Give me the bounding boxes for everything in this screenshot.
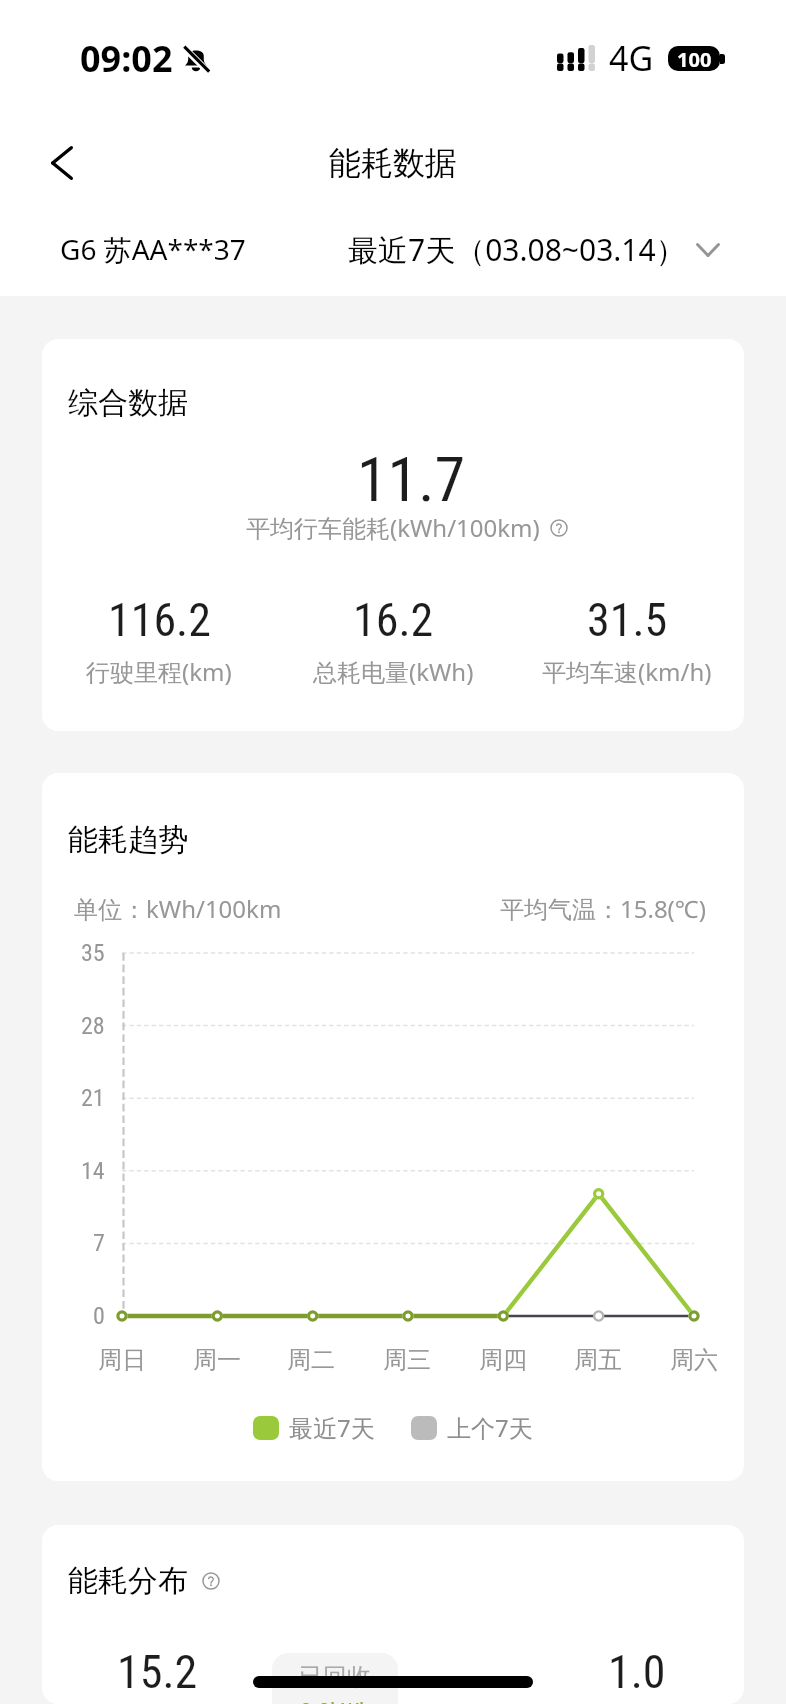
staticText: 平均气温：15.8(℃) (500, 892, 706, 925)
staticText: 11.7 (357, 443, 466, 516)
staticText: 综合数据 (68, 384, 188, 422)
staticText: 7 (93, 1229, 105, 1257)
staticText: 周六 (670, 1345, 718, 1375)
staticText: 31.5 (587, 593, 668, 647)
staticText: 能耗数据 (329, 143, 457, 183)
staticText: 1.0 (608, 1645, 666, 1699)
staticText: 能耗分布 (68, 1562, 188, 1600)
button[interactable]: Back (18, 119, 106, 207)
staticText: 116.2 (108, 593, 211, 647)
staticText: 周五 (574, 1345, 622, 1375)
staticText: 09:02 (80, 34, 173, 83)
staticText: 28 (81, 1012, 105, 1040)
staticText: 周日 (98, 1345, 146, 1375)
staticText: 0 (93, 1302, 105, 1330)
staticText: 21 (81, 1084, 105, 1112)
staticText: 平均行车能耗(kWh/100km) (246, 511, 540, 544)
staticText: 行驶里程(km) (86, 655, 232, 688)
staticText: 单位：kWh/100km (74, 892, 282, 925)
staticText: 0.0kWh (300, 1698, 371, 1704)
staticText: 4G (609, 35, 654, 81)
staticText: 周二 (287, 1345, 335, 1375)
staticText: 周一 (193, 1345, 241, 1375)
staticText: 能耗趋势 (68, 821, 188, 859)
staticText: G6 苏AA***37 (60, 230, 246, 268)
staticText: 总耗电量(kWh) (313, 655, 474, 688)
staticText: 最近7天（03.08~03.14） (348, 229, 686, 270)
staticText: 最近7天 (289, 1411, 375, 1444)
staticText: 14 (81, 1157, 105, 1185)
staticText: 上个7天 (447, 1411, 533, 1444)
staticText: 平均车速(km/h) (542, 655, 712, 688)
staticText: 周四 (479, 1345, 527, 1375)
staticText: 15.2 (117, 1645, 198, 1699)
button[interactable]: 最近7天（03.08~03.14） (348, 229, 720, 270)
staticText: 100 (677, 46, 712, 71)
staticText: 35 (81, 939, 105, 967)
staticText: 16.2 (353, 593, 434, 647)
staticText: 已回收 (299, 1662, 371, 1692)
staticText: 周三 (383, 1345, 431, 1375)
